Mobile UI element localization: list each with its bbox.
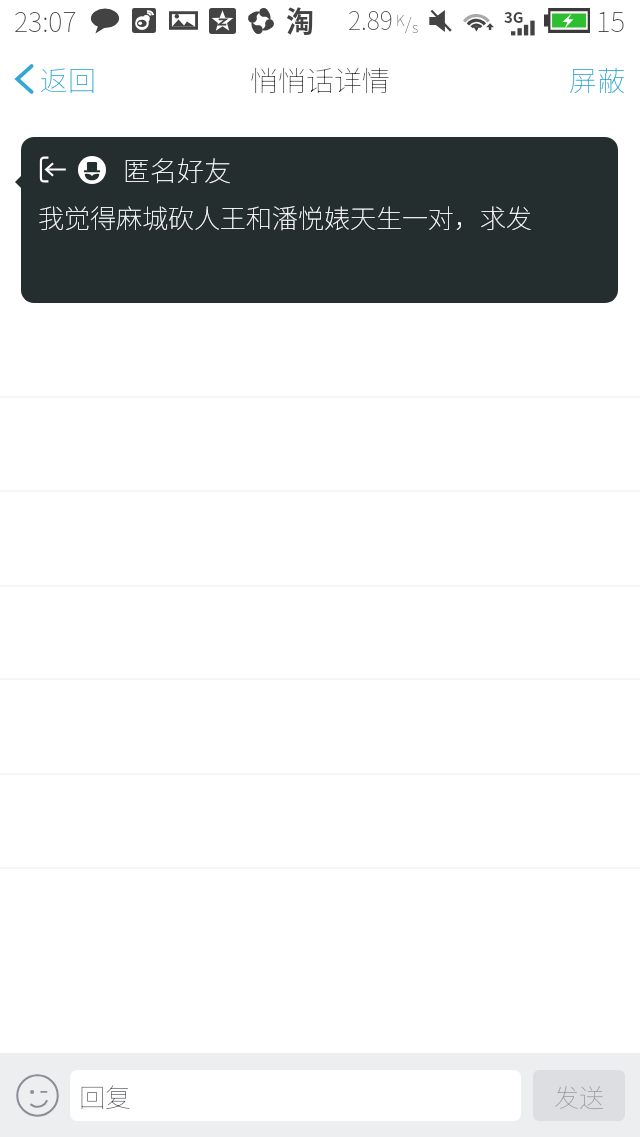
staticText: 15 [596,0,626,41]
staticText: / [405,11,412,34]
staticText: 匿名好友 [123,150,231,189]
staticText: K [396,10,405,30]
staticText: 屏蔽 [569,59,626,100]
button[interactable]: 回复 [70,1070,521,1121]
button[interactable]: Emoji [5,1060,70,1130]
staticText: 2.89 [348,1,393,37]
staticText: s [412,17,419,37]
staticText: 3G [504,6,524,28]
button[interactable]: 屏蔽 [555,48,640,110]
staticText: 发送 [554,1078,605,1114]
staticText: 返回 [40,59,97,100]
staticText: 淘 [286,0,315,41]
staticText: 我觉得麻城砍人王和潘悦婊天生一对，求发 [38,198,533,236]
button[interactable]: 匿名好友 [21,137,618,303]
staticText: 23:07 [14,1,77,40]
staticText: 悄悄话详情 [250,59,391,100]
staticText: 回复 [79,1077,132,1115]
button[interactable]: 发送 [533,1070,625,1121]
button[interactable]: 返回 [0,48,111,110]
